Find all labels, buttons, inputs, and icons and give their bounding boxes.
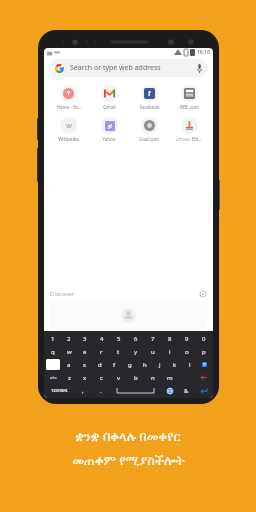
staticText: 0 <box>202 335 206 343</box>
button[interactable]: b <box>127 372 144 383</box>
staticText: a <box>67 361 71 369</box>
button[interactable]: j <box>152 359 167 370</box>
staticText: 123/ሀሁሂ <box>51 388 68 393</box>
button[interactable]: Backspace <box>195 372 212 383</box>
button[interactable]: q <box>45 346 61 357</box>
staticText: b <box>134 374 138 382</box>
button[interactable]: 9 <box>178 333 195 344</box>
button[interactable] <box>50 301 207 329</box>
button[interactable]: n <box>144 372 161 383</box>
button[interactable]: v <box>110 372 127 383</box>
staticText: 9 <box>185 335 189 343</box>
staticText: 2 <box>67 335 71 343</box>
staticText: q <box>51 348 55 356</box>
button[interactable]: 8 <box>161 333 178 344</box>
button[interactable]: t <box>110 346 127 357</box>
button[interactable]: c <box>93 372 110 383</box>
button[interactable]: f <box>129 83 169 112</box>
staticText: 6 <box>134 335 138 343</box>
button[interactable]: Space <box>109 385 161 396</box>
button[interactable]: Discover settings <box>199 290 207 298</box>
staticText: y! <box>108 123 112 129</box>
button[interactable]: 1 <box>45 333 61 344</box>
staticText: e <box>83 348 87 356</box>
button[interactable]: 2 <box>61 333 77 344</box>
staticText: 1 <box>51 335 55 343</box>
button[interactable]: d <box>92 359 107 370</box>
button[interactable]: abc <box>45 372 61 383</box>
button[interactable]: 0 <box>195 333 212 344</box>
button[interactable]: h <box>137 359 152 370</box>
button[interactable]: W <box>48 115 89 144</box>
staticText: . <box>100 387 102 395</box>
button[interactable]: 4 <box>93 333 110 344</box>
button[interactable]: Enter <box>195 385 212 396</box>
staticText: k <box>173 361 177 369</box>
button[interactable]: x <box>77 372 93 383</box>
button[interactable]: l <box>182 359 197 370</box>
staticText: & <box>184 387 189 395</box>
staticText: ቋንቋ በቀላሉ በመቀየር <box>75 427 181 445</box>
button[interactable]: y <box>127 346 144 357</box>
staticText: 7 <box>151 335 155 343</box>
button[interactable]: k <box>167 359 182 370</box>
staticText: v <box>117 374 121 382</box>
button[interactable]: , <box>74 385 92 396</box>
staticText: s <box>83 361 86 369</box>
button[interactable]: Gmail <box>89 83 129 112</box>
staticText: f <box>113 361 116 369</box>
button[interactable]: g <box>122 359 137 370</box>
staticText: abc <box>50 375 57 380</box>
staticText: g <box>128 361 132 369</box>
staticText: n <box>151 374 155 382</box>
button[interactable]: 6 <box>127 333 144 344</box>
staticText: 3 <box>83 335 87 343</box>
button[interactable]: o <box>178 346 195 357</box>
button[interactable]: . <box>92 385 109 396</box>
button[interactable]: Goal.com <box>129 115 169 144</box>
staticText: j <box>159 361 161 369</box>
staticText: m <box>167 374 173 382</box>
staticText: W <box>66 122 72 130</box>
button[interactable]: e <box>77 346 93 357</box>
staticText: l <box>189 361 191 369</box>
button[interactable]: y! <box>89 115 129 144</box>
button[interactable]: r <box>93 346 110 357</box>
button[interactable]: 3 <box>77 333 93 344</box>
staticText: Goal.com <box>139 136 159 142</box>
button[interactable]: 123/ሀሁሂ <box>45 385 74 396</box>
staticText: r <box>100 348 103 356</box>
staticText: Y <box>67 90 71 97</box>
button[interactable]: BBC.com <box>169 83 209 112</box>
button[interactable]: ሪፖርተር Eth… <box>169 115 209 144</box>
button[interactable]: & <box>178 385 195 396</box>
staticText: , <box>82 387 84 395</box>
staticText: መጠቀም የሚያስችሎት <box>72 451 185 469</box>
button[interactable]: w <box>61 346 77 357</box>
staticText: 4 <box>100 335 104 343</box>
button[interactable]: 5 <box>110 333 127 344</box>
button[interactable]: Language globe <box>161 385 178 396</box>
button[interactable]: Y <box>48 83 89 112</box>
staticText: Search or type web address <box>70 63 161 73</box>
button[interactable]: i <box>161 346 178 357</box>
button[interactable]: s <box>77 359 92 370</box>
button[interactable]: Switch language <box>197 359 212 370</box>
button[interactable]: m <box>161 372 178 383</box>
staticText: y <box>134 348 138 356</box>
staticText: u <box>151 348 155 356</box>
button[interactable]: p <box>195 346 212 357</box>
staticText: p <box>202 348 206 356</box>
button[interactable]: z <box>61 372 77 383</box>
button[interactable]: Shift <box>46 359 60 370</box>
staticText: Facebook <box>139 104 160 110</box>
button[interactable]: Search or type web address <box>49 59 208 77</box>
button[interactable]: Discover <box>50 290 207 298</box>
staticText: Home - Yo… <box>56 104 82 110</box>
button[interactable]: f <box>107 359 122 370</box>
button[interactable]: u <box>144 346 161 357</box>
staticText: i <box>169 348 171 356</box>
button[interactable]: a <box>61 359 77 370</box>
button[interactable]: 7 <box>144 333 161 344</box>
staticText: d <box>98 361 102 369</box>
